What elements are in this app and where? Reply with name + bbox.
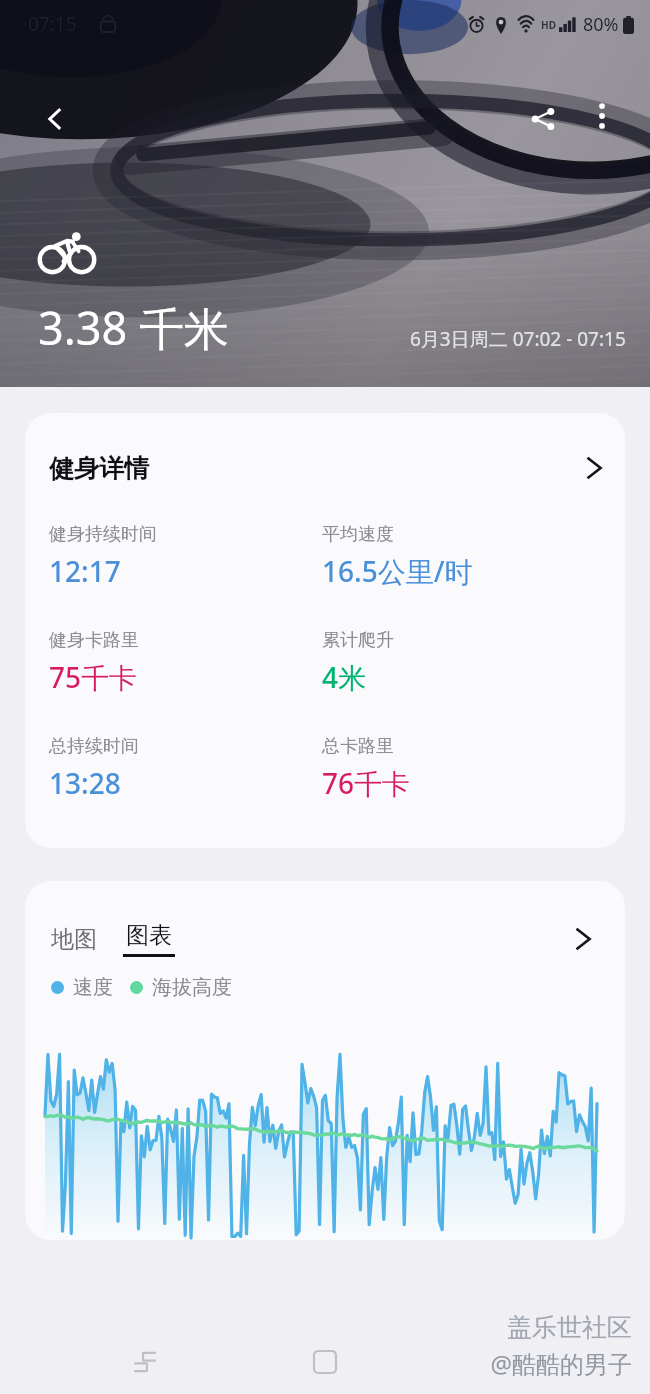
staticText: 总卡路里 — [322, 735, 394, 758]
button[interactable]: Home — [293, 1330, 357, 1394]
button[interactable]: Open chart — [561, 917, 605, 961]
button[interactable]: More options — [576, 90, 628, 142]
staticText: 健身持续时间 — [49, 523, 157, 546]
staticText: 地图 — [51, 925, 97, 954]
button[interactable]: Share — [514, 90, 572, 148]
staticText: 平均速度 — [322, 523, 394, 546]
staticText: 13:28 — [49, 764, 121, 802]
button[interactable]: Back — [26, 90, 84, 148]
staticText: 80% — [583, 12, 619, 37]
staticText: 3.38 千米 — [38, 297, 229, 358]
staticText: 图表 — [126, 921, 172, 950]
staticText: HD — [541, 18, 556, 32]
staticText: 速度 — [73, 975, 113, 1000]
staticText: 75千卡 — [49, 658, 138, 696]
staticText: 健身卡路里 — [49, 629, 139, 652]
staticText: 盖乐世社区 — [507, 1312, 632, 1343]
staticText: 12:17 — [49, 552, 121, 590]
staticText: 累计爬升 — [322, 629, 394, 652]
staticText: 海拔高度 — [152, 975, 232, 1000]
button[interactable]: 地图 — [49, 921, 99, 958]
button[interactable]: Recents — [113, 1330, 177, 1394]
staticText: 6月3日周二 07:02 - 07:15 — [410, 326, 626, 352]
button[interactable]: 健身详情 — [25, 413, 625, 848]
staticText: 76千卡 — [322, 764, 411, 802]
staticText: 16.5公里/时 — [322, 552, 473, 590]
staticText: @酷酷的男子 — [490, 1347, 632, 1380]
staticText: 健身详情 — [49, 453, 149, 484]
staticText: 总持续时间 — [49, 735, 139, 758]
staticText: 07:15 — [28, 11, 77, 37]
button[interactable]: 图表 — [121, 917, 177, 961]
staticText: 4米 — [322, 658, 367, 696]
